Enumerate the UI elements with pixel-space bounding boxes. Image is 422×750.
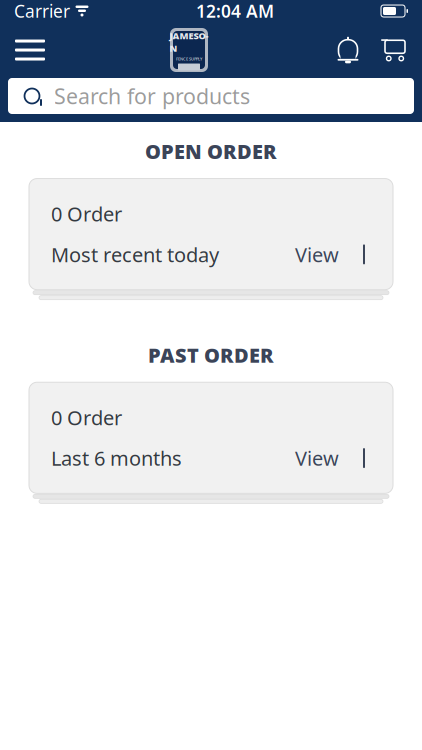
- staticText: View: [295, 241, 339, 268]
- staticText: FENCE SUPPLY: [176, 56, 202, 61]
- button[interactable]: Search for products: [8, 78, 414, 114]
- staticText: Search for products: [54, 82, 250, 110]
- staticText: Most recent today: [51, 241, 219, 268]
- staticText: JAMESON: [169, 29, 208, 54]
- staticText: 0 Order: [51, 201, 122, 227]
- staticText: OPEN ORDER: [145, 138, 277, 165]
- button[interactable]: Notifications: [326, 28, 370, 72]
- button[interactable]: 0 Order: [29, 382, 393, 493]
- staticText: 12:04 AM: [196, 0, 274, 22]
- staticText: PAST ORDER: [148, 342, 274, 368]
- button[interactable]: Menu: [8, 28, 52, 72]
- staticText: Last 6 months: [51, 445, 182, 471]
- staticText: 0 Order: [51, 404, 122, 431]
- button[interactable]: 0 Order: [29, 179, 393, 290]
- staticText: View: [295, 445, 339, 471]
- staticText: Carrier: [14, 0, 70, 22]
- button[interactable]: Cart: [370, 28, 414, 72]
